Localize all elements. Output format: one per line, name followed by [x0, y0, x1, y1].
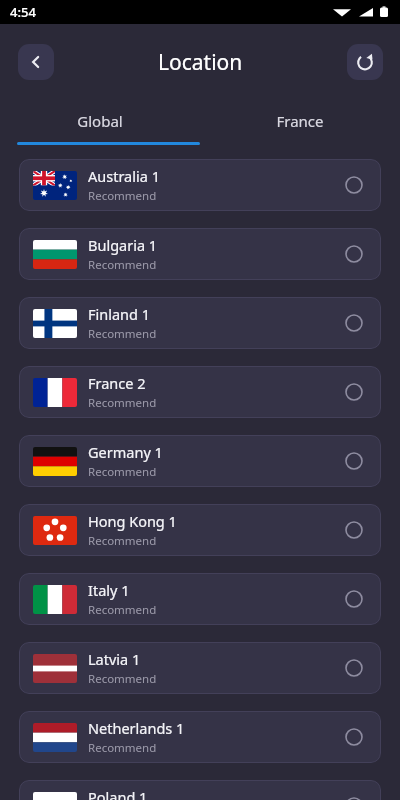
staticText: Italy 1 [88, 580, 130, 600]
staticText: Australia 1 [88, 166, 160, 186]
button[interactable]: Netherlands 1 [19, 711, 381, 763]
button[interactable]: Select Bulgaria 1 [333, 233, 375, 275]
button[interactable]: Select Hong Kong 1 [333, 509, 375, 551]
button[interactable]: Select Australia 1 [333, 164, 375, 206]
button[interactable]: Finland 1 [19, 297, 381, 349]
staticText: Recommend [88, 740, 157, 756]
button[interactable]: Bulgaria 1 [19, 228, 381, 280]
staticText: France 2 [88, 373, 146, 393]
staticText: Finland 1 [88, 304, 151, 324]
button[interactable]: Global [0, 100, 200, 142]
button[interactable]: Select Italy 1 [333, 578, 375, 620]
button[interactable]: Italy 1 [19, 573, 381, 625]
button[interactable]: Select Finland 1 [333, 302, 375, 344]
button[interactable]: Hong Kong 1 [19, 504, 381, 556]
button[interactable]: France 2 [19, 366, 381, 418]
staticText: Recommend [88, 533, 157, 549]
staticText: Germany 1 [88, 442, 163, 462]
button[interactable]: France [200, 100, 400, 142]
button[interactable]: Back [18, 44, 54, 80]
button[interactable]: Select Netherlands 1 [333, 716, 375, 758]
staticText: Hong Kong 1 [88, 511, 177, 531]
button[interactable]: Latvia 1 [19, 642, 381, 694]
staticText: 4:54 [10, 3, 36, 21]
staticText: France [276, 111, 324, 131]
staticText: Recommend [88, 188, 157, 204]
button[interactable]: Select Latvia 1 [333, 647, 375, 689]
staticText: Location [158, 48, 243, 77]
button[interactable]: Select France 2 [333, 371, 375, 413]
button[interactable]: Poland 1 [19, 780, 381, 800]
staticText: Recommend [88, 395, 157, 411]
staticText: Recommend [88, 326, 157, 342]
button[interactable]: Select Poland 1 [333, 785, 375, 800]
staticText: Bulgaria 1 [88, 235, 158, 255]
staticText: Recommend [88, 464, 157, 480]
staticText: Recommend [88, 671, 157, 687]
button[interactable]: Refresh [347, 44, 383, 80]
staticText: Latvia 1 [88, 649, 141, 669]
button[interactable]: Australia 1 [19, 159, 381, 211]
staticText: Poland 1 [88, 787, 148, 800]
button[interactable]: Select Germany 1 [333, 440, 375, 482]
staticText: Recommend [88, 257, 157, 273]
staticText: Netherlands 1 [88, 718, 185, 738]
button[interactable]: Germany 1 [19, 435, 381, 487]
staticText: Global [77, 111, 123, 131]
staticText: Recommend [88, 602, 157, 618]
